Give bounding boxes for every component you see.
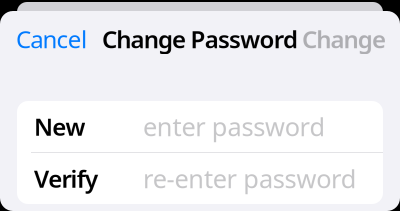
- button[interactable]: Verify: [17, 153, 383, 204]
- staticText: Change: [302, 23, 386, 55]
- button[interactable]: Change: [302, 23, 386, 55]
- button[interactable]: New: [17, 101, 383, 152]
- staticText: enter password: [143, 110, 325, 143]
- staticText: re-enter password: [143, 162, 357, 195]
- staticText: New: [34, 111, 85, 142]
- staticText: Change Password: [102, 23, 298, 55]
- staticText: Cancel: [16, 23, 87, 55]
- button[interactable]: Cancel: [16, 23, 87, 55]
- staticText: Verify: [34, 163, 98, 194]
